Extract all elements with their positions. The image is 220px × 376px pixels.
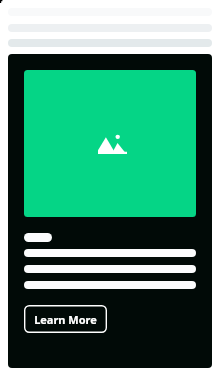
button[interactable]: Learn More (24, 305, 107, 333)
staticText: Learn More (34, 312, 97, 327)
button[interactable]: Learn More (8, 54, 212, 368)
